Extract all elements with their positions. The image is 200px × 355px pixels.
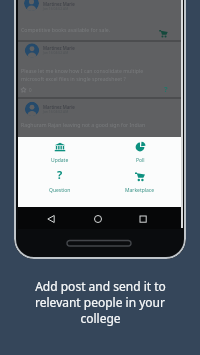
staticText: microsoft excel files in single spreadsh… [21, 75, 126, 82]
staticText: Martinez Marie [43, 1, 75, 7]
button[interactable] [42, 210, 60, 228]
staticText: ? [164, 84, 168, 94]
button[interactable]: Update [30, 139, 90, 169]
staticText: Marketplace [125, 187, 155, 194]
staticText: Competitive books available for sale. [21, 26, 111, 33]
staticText: Martinez Marie [43, 104, 75, 110]
staticText: Question [49, 187, 71, 194]
staticText: ? [57, 167, 63, 182]
staticText: Martinez Marie [43, 45, 75, 51]
staticText: relevant people in your [35, 294, 165, 310]
button[interactable]: Marketplace [110, 169, 170, 199]
staticText: Poll [136, 157, 145, 164]
staticText: Please let me know how I can consolidate… [21, 67, 144, 74]
staticText: Update [51, 157, 69, 164]
staticText: college [80, 310, 121, 326]
staticText: Add post and send it to [35, 278, 166, 294]
button[interactable]: Poll [110, 139, 170, 169]
button[interactable] [89, 210, 107, 228]
button[interactable] [134, 210, 152, 228]
staticText: 0 [29, 87, 32, 93]
button[interactable]: Question [30, 169, 90, 199]
staticText: Raghuram Rajan leaving not a good sign f… [21, 121, 146, 128]
